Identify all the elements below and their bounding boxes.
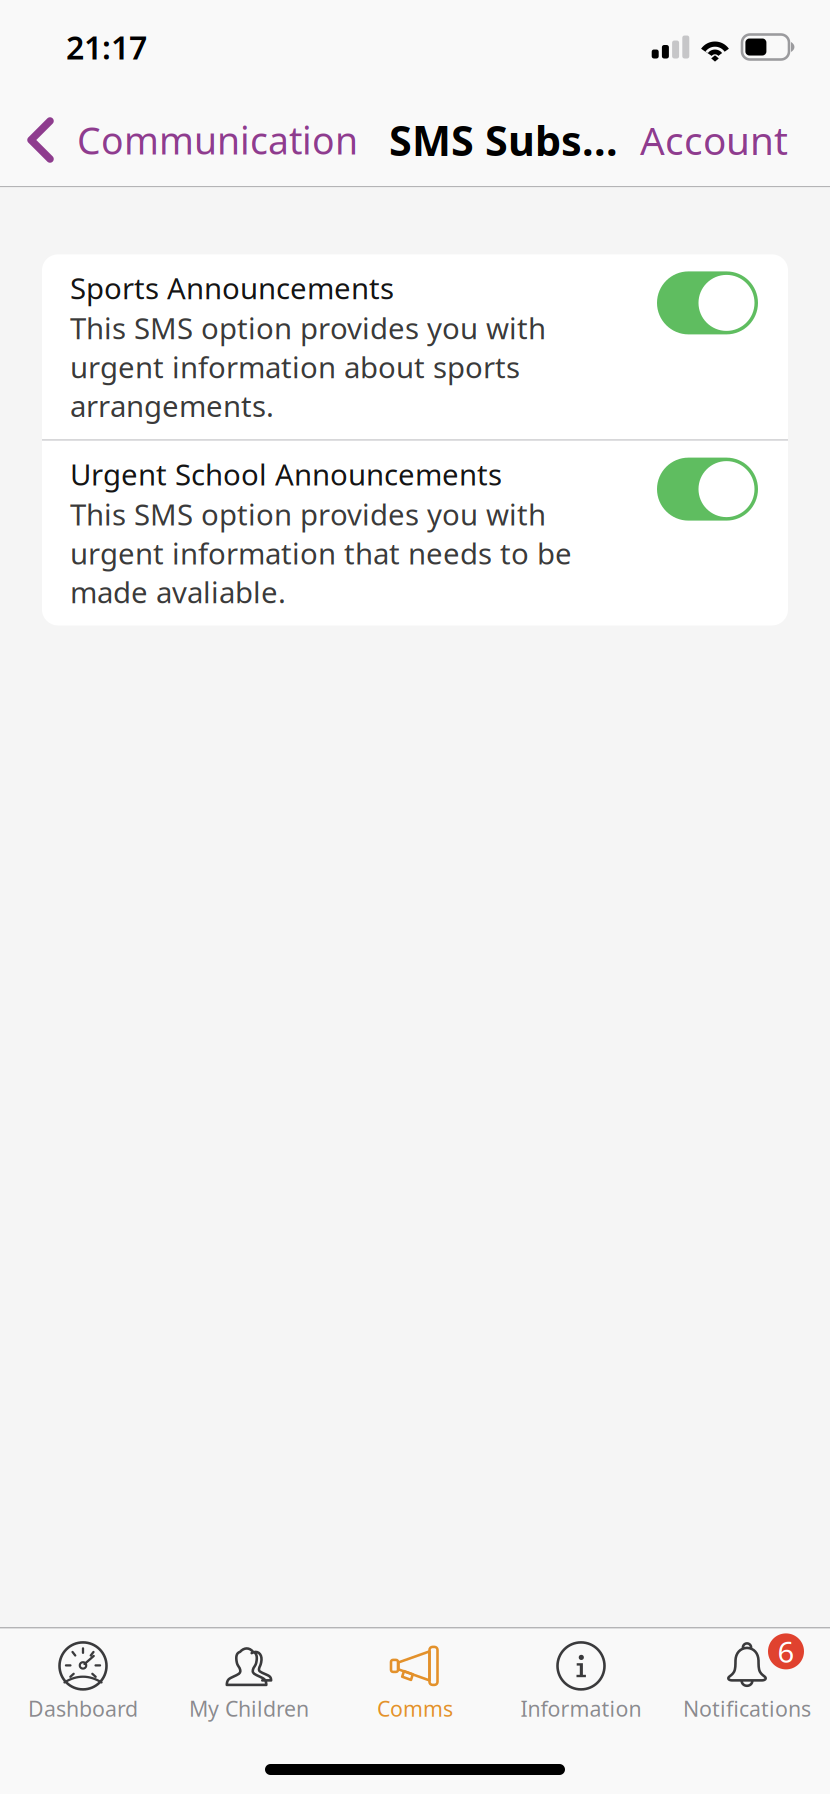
staticText: Urgent School Announcements [70,455,502,494]
button[interactable]: Sports Announcements [657,271,758,334]
staticText: This SMS option provides you with urgent… [70,495,572,611]
button[interactable]: Dashboard [0,1628,166,1723]
staticText: This SMS option provides you with urgent… [70,308,546,425]
button[interactable]: Account [640,94,830,186]
staticText: My Children [189,1694,309,1723]
staticText: Sports Announcements [70,268,394,307]
staticText: SMS Subs... [389,113,618,167]
button[interactable]: 6 [664,1628,830,1723]
staticText: 6 [777,1632,794,1671]
staticText: Communication [77,115,358,165]
button[interactable]: Sports Announcements [42,254,788,439]
staticText: Dashboard [28,1694,138,1723]
staticText: Comms [377,1694,453,1723]
staticText: Notifications [683,1694,811,1723]
button[interactable]: Communication [0,94,364,186]
button[interactable]: Information [498,1628,664,1723]
staticText: Account [640,114,788,166]
button[interactable]: Urgent School Announcements [42,441,788,625]
button[interactable]: Urgent School Announcements [657,458,758,521]
button[interactable]: Comms [332,1628,498,1723]
staticText: 21:17 [66,26,147,68]
staticText: Information [520,1694,641,1723]
button[interactable]: My Children [166,1628,332,1723]
